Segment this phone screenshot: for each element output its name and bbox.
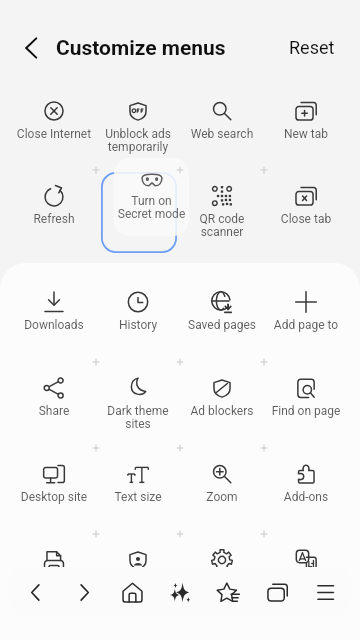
- staticText: Text size: [96, 490, 180, 504]
- staticText: Find on page: [264, 404, 348, 418]
- staticText: Add page to: [264, 318, 348, 332]
- button[interactable]: Unblock ads temporarily: [96, 91, 180, 153]
- staticText: Customize menus: [56, 36, 226, 61]
- button[interactable]: Refresh: [12, 176, 96, 238]
- button[interactable]: Share: [12, 368, 96, 430]
- staticText: Share: [12, 404, 96, 418]
- button[interactable]: Zoom: [180, 454, 264, 516]
- staticText: Add-ons: [264, 490, 348, 504]
- button[interactable]: Reset: [283, 33, 341, 62]
- button[interactable]: Back: [13, 570, 57, 614]
- staticText: Desktop site: [12, 490, 96, 504]
- button[interactable]: Add page to: [264, 282, 348, 344]
- button[interactable]: Dark theme sites: [96, 368, 180, 430]
- staticText: Zoom: [180, 490, 264, 504]
- button[interactable]: Saved pages: [180, 282, 264, 344]
- button[interactable]: Find on page: [264, 368, 348, 430]
- staticText: Dark theme sites: [96, 404, 180, 431]
- staticText: Refresh: [12, 212, 96, 226]
- button[interactable]: Home: [110, 570, 154, 614]
- button[interactable]: History: [96, 282, 180, 344]
- staticText: Ad blockers: [180, 404, 264, 418]
- button[interactable]: Forward: [62, 570, 106, 614]
- button[interactable]: Ad blockers: [180, 368, 264, 430]
- button[interactable]: Browsing assist: [158, 570, 202, 614]
- button[interactable]: Downloads: [12, 282, 96, 344]
- button[interactable]: Text size: [96, 454, 180, 516]
- button[interactable]: Desktop site: [12, 454, 96, 516]
- staticText: Turn on Secret mode: [114, 194, 189, 221]
- staticText: Downloads: [12, 318, 96, 332]
- button[interactable]: New tab: [264, 91, 348, 153]
- button[interactable]: Add-ons: [264, 454, 348, 516]
- staticText: History: [96, 318, 180, 332]
- button[interactable]: Web search: [180, 91, 264, 153]
- button[interactable]: [180, 540, 264, 602]
- staticText: QR code scanner: [180, 212, 264, 239]
- button[interactable]: Bookmarks: [206, 570, 250, 614]
- staticText: Web search: [180, 127, 264, 141]
- button[interactable]: Menu: [303, 570, 347, 614]
- staticText: Saved pages: [180, 318, 264, 332]
- button[interactable]: [12, 540, 96, 602]
- staticText: Close Internet: [12, 127, 96, 141]
- button[interactable]: Close tab: [264, 176, 348, 238]
- button[interactable]: QR code scanner: [180, 176, 264, 238]
- button[interactable]: Close Internet: [12, 91, 96, 153]
- staticText: Close tab: [264, 212, 348, 226]
- button[interactable]: Navigate up: [11, 28, 51, 68]
- button[interactable]: Tabs: [255, 570, 299, 614]
- staticText: New tab: [264, 127, 348, 141]
- button[interactable]: Turn on Secret mode: [114, 158, 189, 236]
- staticText: Reset: [289, 37, 335, 58]
- staticText: Unblock ads temporarily: [96, 127, 180, 154]
- button[interactable]: [96, 540, 180, 602]
- button[interactable]: [264, 540, 348, 602]
